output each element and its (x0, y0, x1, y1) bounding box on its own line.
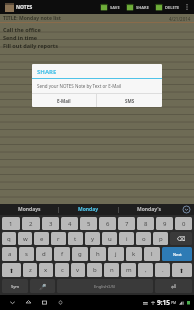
button[interactable]: m (121, 263, 136, 277)
staticText: 8 (144, 220, 148, 228)
button[interactable]: SHARE (123, 0, 152, 14)
button[interactable]: Shift (172, 263, 192, 277)
staticText: Mondays (18, 206, 41, 213)
button[interactable]: Voice input (30, 279, 55, 293)
button[interactable]: a (2, 247, 17, 261)
staticText: NOTES (16, 4, 33, 11)
staticText: ⌫ (177, 235, 186, 242)
staticText: p (159, 235, 163, 243)
button[interactable]: 0 (175, 217, 192, 230)
button[interactable]: c (55, 263, 69, 277)
staticText: j (115, 250, 117, 258)
button[interactable]: j (108, 247, 124, 261)
staticText: 6 (106, 220, 110, 228)
button[interactable]: d (36, 247, 52, 261)
button[interactable]: . (155, 263, 170, 277)
button[interactable]: f (54, 247, 70, 261)
staticText: n (110, 266, 114, 274)
button[interactable]: Screenshot (52, 295, 68, 310)
button[interactable]: n (104, 263, 119, 277)
staticText: l (151, 250, 153, 258)
button[interactable]: Mondays (0, 204, 58, 215)
staticText: 0 (182, 220, 186, 228)
staticText: y (91, 235, 95, 243)
button[interactable]: v (71, 263, 85, 277)
staticText: 7 (125, 220, 129, 228)
button[interactable]: Shift (2, 263, 21, 277)
button[interactable]: SMS (97, 94, 162, 107)
staticText: Monday's (137, 206, 161, 213)
button[interactable]: Monday (59, 204, 118, 215)
button[interactable]: Back (4, 295, 20, 310)
staticText: PM (171, 300, 177, 305)
button[interactable]: k (126, 247, 142, 261)
button[interactable]: , (138, 263, 153, 277)
button[interactable]: y (85, 232, 100, 245)
staticText: z (29, 266, 32, 274)
button[interactable]: DELETE (152, 0, 183, 14)
button[interactable]: NOTES (3, 3, 35, 12)
button[interactable]: l (144, 247, 160, 261)
button[interactable]: 5 (80, 217, 97, 230)
button[interactable]: More options (183, 0, 191, 14)
button[interactable]: b (87, 263, 102, 277)
staticText: q (7, 235, 11, 243)
staticText: h (96, 250, 100, 258)
button[interactable]: 9 (156, 217, 173, 230)
staticText: Next (173, 252, 182, 257)
staticText: g (78, 250, 82, 258)
button[interactable]: Next (162, 247, 192, 261)
button[interactable]: u (102, 232, 117, 245)
button[interactable]: h (90, 247, 106, 261)
button[interactable]: e (34, 232, 49, 245)
button[interactable]: 7 (118, 217, 135, 230)
staticText: b (93, 266, 97, 274)
staticText: 🎤 (39, 283, 47, 290)
button[interactable]: Enter (155, 279, 192, 293)
staticText: 2 (29, 220, 33, 228)
staticText: SHARE (136, 5, 149, 10)
button[interactable]: s (19, 247, 34, 261)
staticText: c (61, 266, 64, 274)
staticText: t (74, 235, 77, 243)
staticText: d (42, 250, 46, 258)
button[interactable]: z (23, 263, 37, 277)
button[interactable]: x (39, 263, 53, 277)
staticText: x (44, 266, 48, 274)
button[interactable]: Home (20, 295, 36, 310)
button[interactable]: w (18, 232, 32, 245)
staticText: SAVE (110, 5, 120, 10)
button[interactable]: r (51, 232, 66, 245)
button[interactable]: Backspace (170, 232, 192, 245)
button[interactable]: E-Mail (32, 94, 96, 107)
button[interactable]: 8 (137, 217, 154, 230)
button[interactable]: SAVE (97, 0, 123, 14)
staticText: ⬆ (179, 267, 185, 274)
button[interactable]: Monday's (119, 204, 178, 215)
staticText: Call the office (3, 26, 41, 33)
staticText: DELETE (165, 5, 180, 10)
button[interactable]: o (136, 232, 151, 245)
staticText: SHARE (37, 68, 57, 76)
button[interactable]: Expand suggestions (178, 204, 194, 215)
button[interactable]: 3 (42, 217, 59, 230)
staticText: , (145, 266, 147, 274)
staticText: 5 (87, 220, 91, 228)
button[interactable]: p (153, 232, 168, 245)
staticText: e (40, 235, 44, 243)
button[interactable]: 1 (2, 217, 20, 230)
button[interactable]: g (72, 247, 88, 261)
button[interactable]: Symbols (2, 279, 28, 293)
button[interactable]: i (119, 232, 134, 245)
button[interactable]: 2 (22, 217, 40, 230)
staticText: TITLE: Monday note list (3, 15, 61, 22)
button[interactable]: 4 (61, 217, 78, 230)
button[interactable]: t (68, 232, 83, 245)
staticText: . (162, 266, 164, 274)
button[interactable]: Recent apps (36, 295, 52, 310)
button[interactable]: Space (57, 279, 153, 293)
staticText: k (132, 250, 136, 258)
button[interactable]: 6 (99, 217, 116, 230)
staticText: m (126, 266, 132, 274)
button[interactable]: q (2, 232, 16, 245)
